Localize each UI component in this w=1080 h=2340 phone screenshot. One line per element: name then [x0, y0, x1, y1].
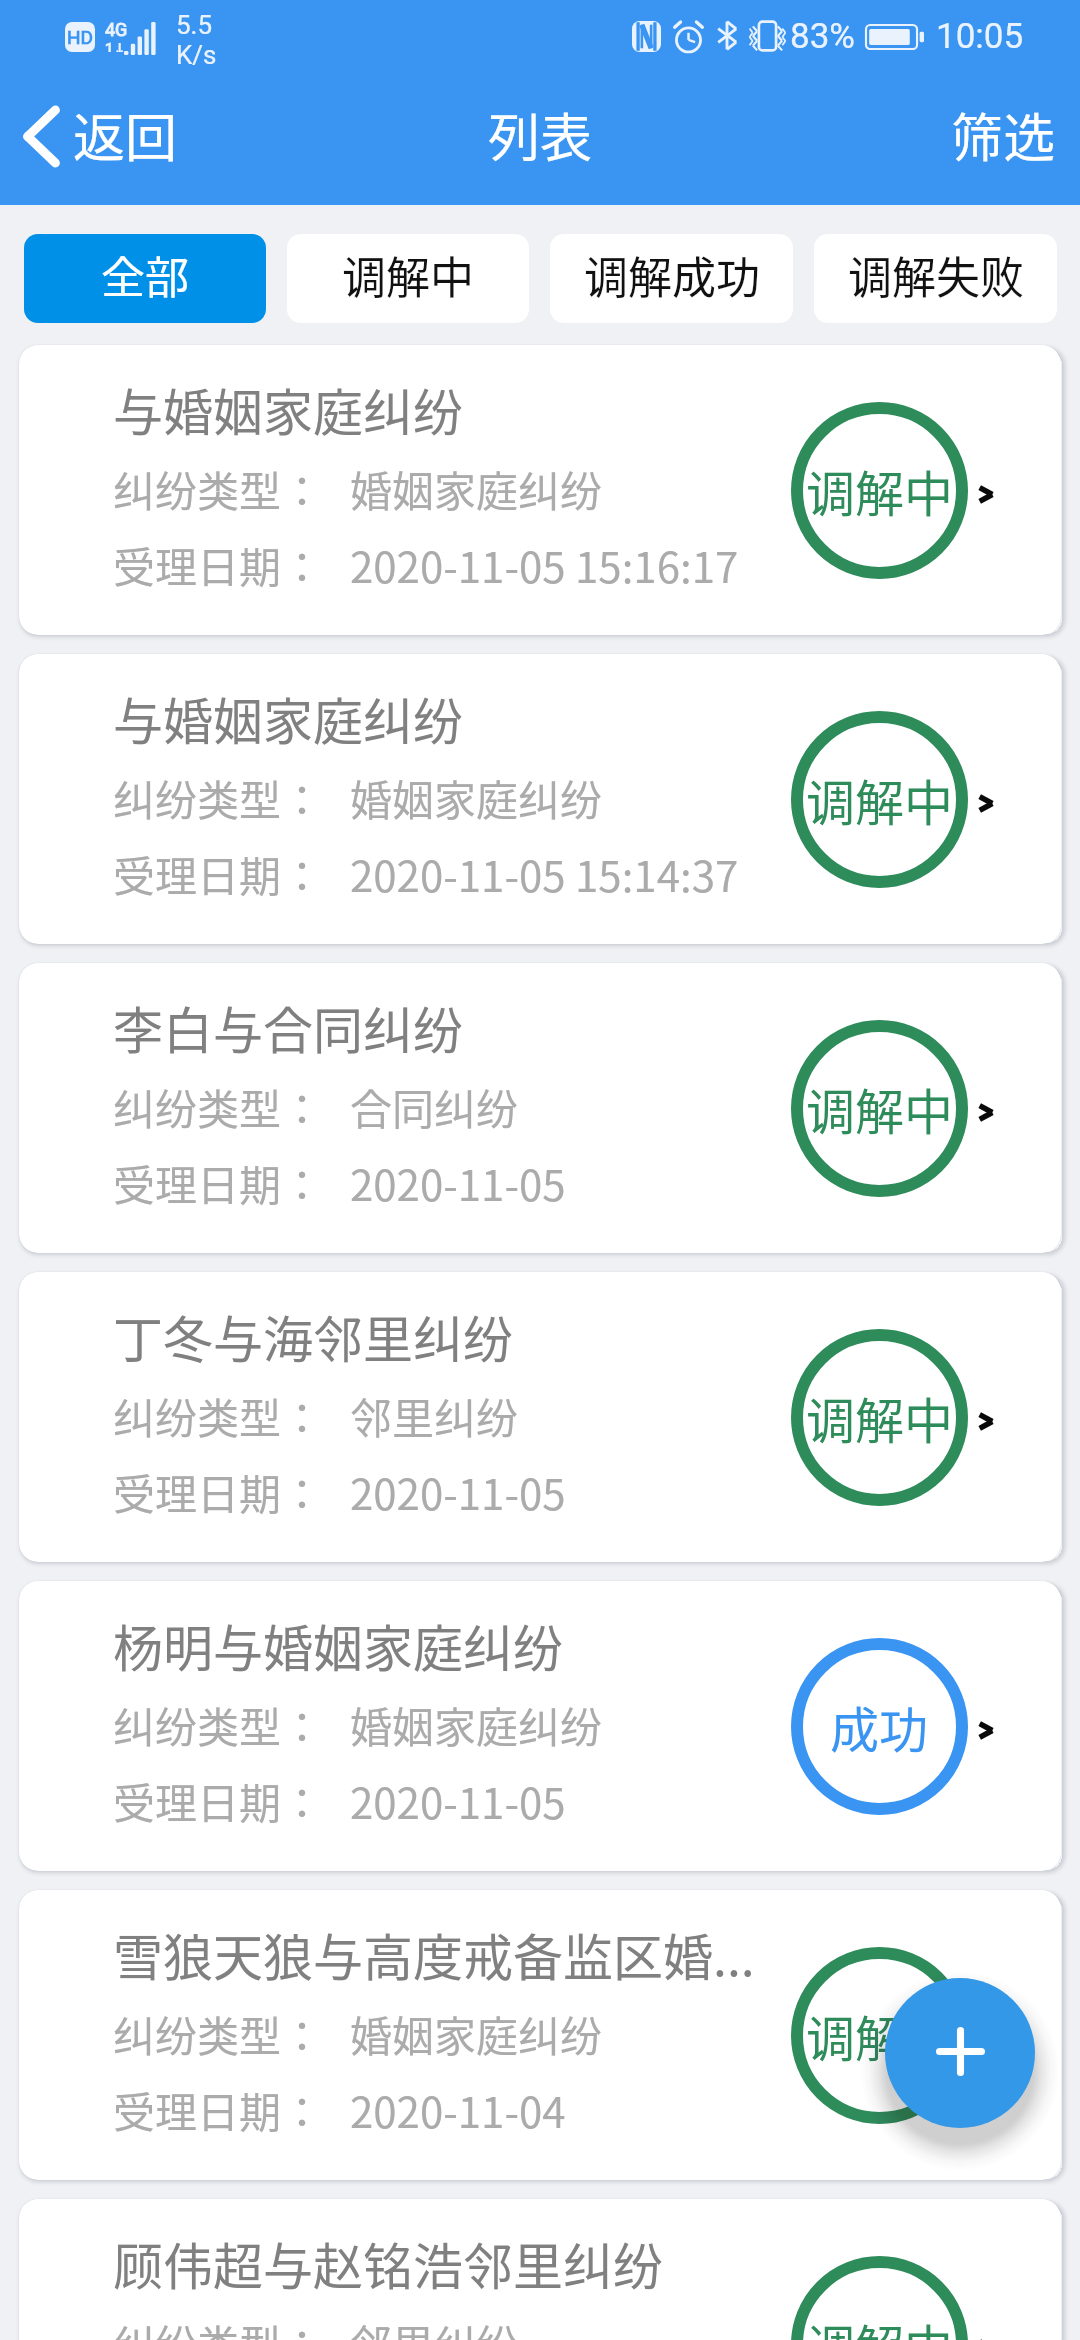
button[interactable]: 与婚姻家庭纠纷: [19, 654, 1061, 944]
staticText: 纠纷类型：: [113, 1694, 324, 1755]
staticText: 纠纷类型：: [113, 1076, 324, 1137]
button[interactable]: Add: [885, 1978, 1035, 2128]
staticText: 调解中: [806, 764, 954, 835]
staticText: 2020-11-05: [350, 1770, 566, 1831]
button[interactable]: 返回: [0, 83, 202, 186]
staticText: 调解中: [806, 2309, 954, 2340]
button[interactable]: 筛选: [927, 83, 1080, 186]
staticText: 2020-11-05 15:14:37: [350, 843, 739, 904]
staticText: 调解中: [806, 1073, 954, 1144]
button[interactable]: 调解中: [287, 234, 529, 323]
staticText: 调解中: [806, 1382, 954, 1453]
staticText: 受理日期：: [113, 2079, 324, 2140]
staticText: 受理日期：: [113, 843, 324, 904]
staticText: 2020-11-05 15:16:17: [350, 534, 739, 595]
staticText: 调解成功: [584, 243, 760, 307]
staticText: 调解中: [342, 243, 474, 307]
staticText: 受理日期：: [113, 1461, 324, 1522]
staticText: 83%: [790, 16, 855, 57]
staticText: 2020-11-04: [350, 2079, 566, 2140]
staticText: 受理日期：: [113, 1152, 324, 1213]
button[interactable]: 雪狼天狼与高度戒备监区婚...: [19, 1890, 1061, 2180]
staticText: 4G: [105, 19, 128, 40]
staticText: 邻里纠纷: [350, 2312, 519, 2340]
staticText: 纠纷类型：: [113, 2312, 324, 2340]
staticText: 2020-11-05: [350, 1152, 566, 1213]
button[interactable]: 李白与合同纠纷: [19, 963, 1061, 1253]
staticText: 纠纷类型：: [113, 1385, 324, 1446]
staticText: 2020-11-05: [350, 1461, 566, 1522]
staticText: 10:05: [936, 16, 1024, 57]
staticText: 丁冬与海邻里纠纷: [113, 1300, 513, 1372]
staticText: 1↓: [105, 40, 126, 52]
staticText: 婚姻家庭纠纷: [350, 2003, 603, 2064]
button[interactable]: 丁冬与海邻里纠纷: [19, 1272, 1061, 1562]
staticText: 与婚姻家庭纠纷: [113, 373, 463, 445]
button[interactable]: 调解成功: [550, 234, 793, 323]
staticText: 成功: [830, 1691, 929, 1762]
staticText: 邻里纠纷: [350, 1385, 519, 1446]
staticText: 筛选: [951, 97, 1056, 172]
button[interactable]: 与婚姻家庭纠纷: [19, 345, 1061, 635]
staticText: 受理日期：: [113, 1770, 324, 1831]
staticText: 顾伟超与赵铭浩邻里纠纷: [113, 2227, 663, 2299]
staticText: 返回: [73, 97, 178, 172]
staticText: 婚姻家庭纠纷: [350, 458, 603, 519]
staticText: 合同纠纷: [350, 1076, 519, 1137]
staticText: 雪狼天狼与高度戒备监区婚...: [113, 1918, 755, 1990]
staticText: 受理日期：: [113, 534, 324, 595]
staticText: 纠纷类型：: [113, 2003, 324, 2064]
staticText: 调解失败: [848, 243, 1024, 307]
button[interactable]: 顾伟超与赵铭浩邻里纠纷: [19, 2199, 1061, 2340]
staticText: 5.5: [176, 10, 213, 40]
staticText: 与婚姻家庭纠纷: [113, 682, 463, 754]
staticText: HD: [67, 26, 94, 48]
staticText: 全部: [101, 243, 189, 307]
staticText: 纠纷类型：: [113, 767, 324, 828]
staticText: 调解中: [806, 455, 954, 526]
button[interactable]: 全部: [24, 234, 266, 323]
staticText: 婚姻家庭纠纷: [350, 767, 603, 828]
staticText: K/s: [176, 40, 217, 70]
button[interactable]: 调解失败: [814, 234, 1057, 323]
staticText: 调解中: [806, 2000, 954, 2071]
staticText: 列表: [488, 97, 593, 172]
staticText: 纠纷类型：: [113, 458, 324, 519]
staticText: 杨明与婚姻家庭纠纷: [113, 1609, 563, 1681]
staticText: 婚姻家庭纠纷: [350, 1694, 603, 1755]
staticText: 李白与合同纠纷: [113, 991, 463, 1063]
button[interactable]: 杨明与婚姻家庭纠纷: [19, 1581, 1061, 1871]
